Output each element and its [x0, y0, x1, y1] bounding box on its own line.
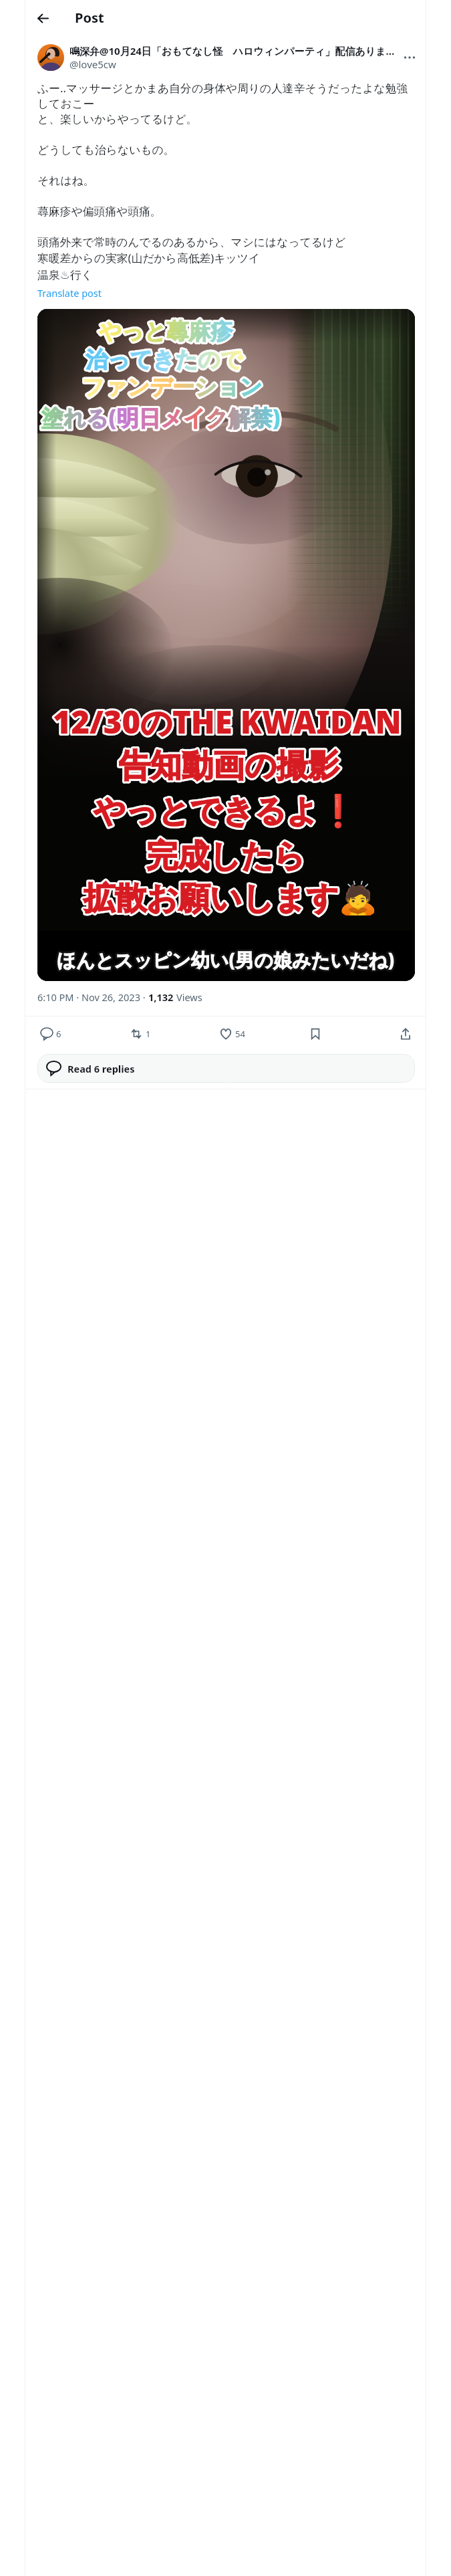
button[interactable]: Share	[397, 1025, 414, 1043]
staticText: ふー..マッサージとかまあ自分の身体や周りの人達辛そうだったよな勉強しておこー …	[37, 80, 417, 282]
staticText: Read 6 replies	[67, 1062, 135, 1075]
staticText: ファンデーション	[82, 373, 263, 401]
staticText: 完成したら	[146, 837, 306, 876]
button[interactable]: Repost	[128, 1025, 154, 1043]
button[interactable]: More options	[398, 46, 421, 69]
button[interactable]: Like	[217, 1025, 248, 1043]
staticText: 拡散お願いします🙇	[84, 879, 378, 918]
staticText: ファンデーション	[82, 373, 263, 401]
staticText: 1,132	[148, 990, 176, 1004]
button[interactable]: Read 6 replies	[37, 1054, 415, 1083]
staticText: 塗れる(明日メイク解禁)	[41, 403, 281, 433]
staticText: やっと蕁麻疹	[99, 318, 233, 346]
staticText: やっと蕁麻疹	[99, 318, 233, 346]
staticText: 拡散お願いします🙇	[84, 879, 378, 918]
button[interactable]: Reply	[38, 1025, 64, 1043]
staticText: 54	[235, 1028, 245, 1040]
staticText: Views	[176, 990, 202, 1004]
staticText: 1	[146, 1028, 151, 1040]
staticText: @love5cw	[69, 58, 116, 71]
staticText: 12/30のTHE KWAIDAN	[53, 700, 402, 743]
staticText: 治ってきたので	[86, 346, 243, 374]
button[interactable]: Translate post	[37, 286, 102, 300]
staticText: ほんとスッピン幼い(男の娘みたいだね)	[57, 947, 395, 972]
button[interactable]: Back	[31, 6, 55, 30]
staticText: 治ってきたので	[86, 346, 243, 374]
staticText: 6:10 PM · Nov 26, 2023 ·	[37, 990, 148, 1004]
staticText: 完成したら	[146, 837, 306, 876]
staticText: 12/30のTHE KWAIDAN	[53, 700, 402, 743]
staticText: やっとできるよ❗	[94, 792, 358, 831]
staticText: Post	[75, 9, 104, 27]
staticText: 塗れる(明日メイク解禁)	[41, 403, 281, 433]
staticText: 告知動画の撮影	[119, 746, 340, 786]
staticText: ほんとスッピン幼い(男の娘みたいだね)	[57, 947, 395, 972]
button[interactable]: Bookmark	[307, 1025, 324, 1043]
staticText: 鳴深弁@10月24日「おもてなし怪 ハロウィンパーティ」配信ありま…	[69, 44, 395, 58]
staticText: やっとできるよ❗	[94, 792, 358, 831]
button[interactable]: Post image	[37, 309, 415, 981]
button[interactable]: Profile picture	[37, 44, 64, 71]
staticText: 6	[56, 1028, 61, 1040]
staticText: 告知動画の撮影	[119, 746, 340, 786]
